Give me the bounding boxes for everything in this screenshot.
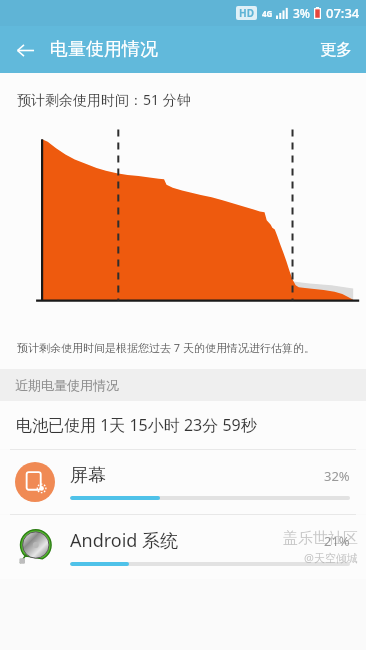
button[interactable]: 更多 (306, 30, 366, 70)
staticText: 3% (293, 5, 311, 21)
staticText: Android 系统 (70, 528, 324, 553)
staticText: 更多 (320, 40, 352, 60)
staticText: 32% (324, 467, 350, 485)
staticText: 07:34 (326, 4, 360, 22)
button[interactable]: 屏幕 (0, 450, 366, 514)
staticText: 近期电量使用情况 (15, 377, 119, 393)
button[interactable]: Back (8, 33, 42, 67)
staticText: 屏幕 (70, 464, 324, 487)
staticText: 预计剩余使用时间：51 分钟 (17, 90, 191, 109)
staticText: 21% (324, 532, 350, 550)
staticText: 电量使用情况 (50, 38, 158, 61)
staticText: 预计剩余使用时间是根据您过去 7 天的使用情况进行估算的。 (17, 340, 316, 355)
staticText: HD (239, 6, 254, 20)
staticText: 4G (262, 8, 273, 19)
staticText: 电池已使用 1天 15小时 23分 59秒 (16, 414, 257, 436)
staticText: 盖乐世社区 (283, 529, 358, 548)
staticText: @天空倾城 (304, 550, 358, 565)
button[interactable]: Android 系统 (0, 515, 366, 579)
